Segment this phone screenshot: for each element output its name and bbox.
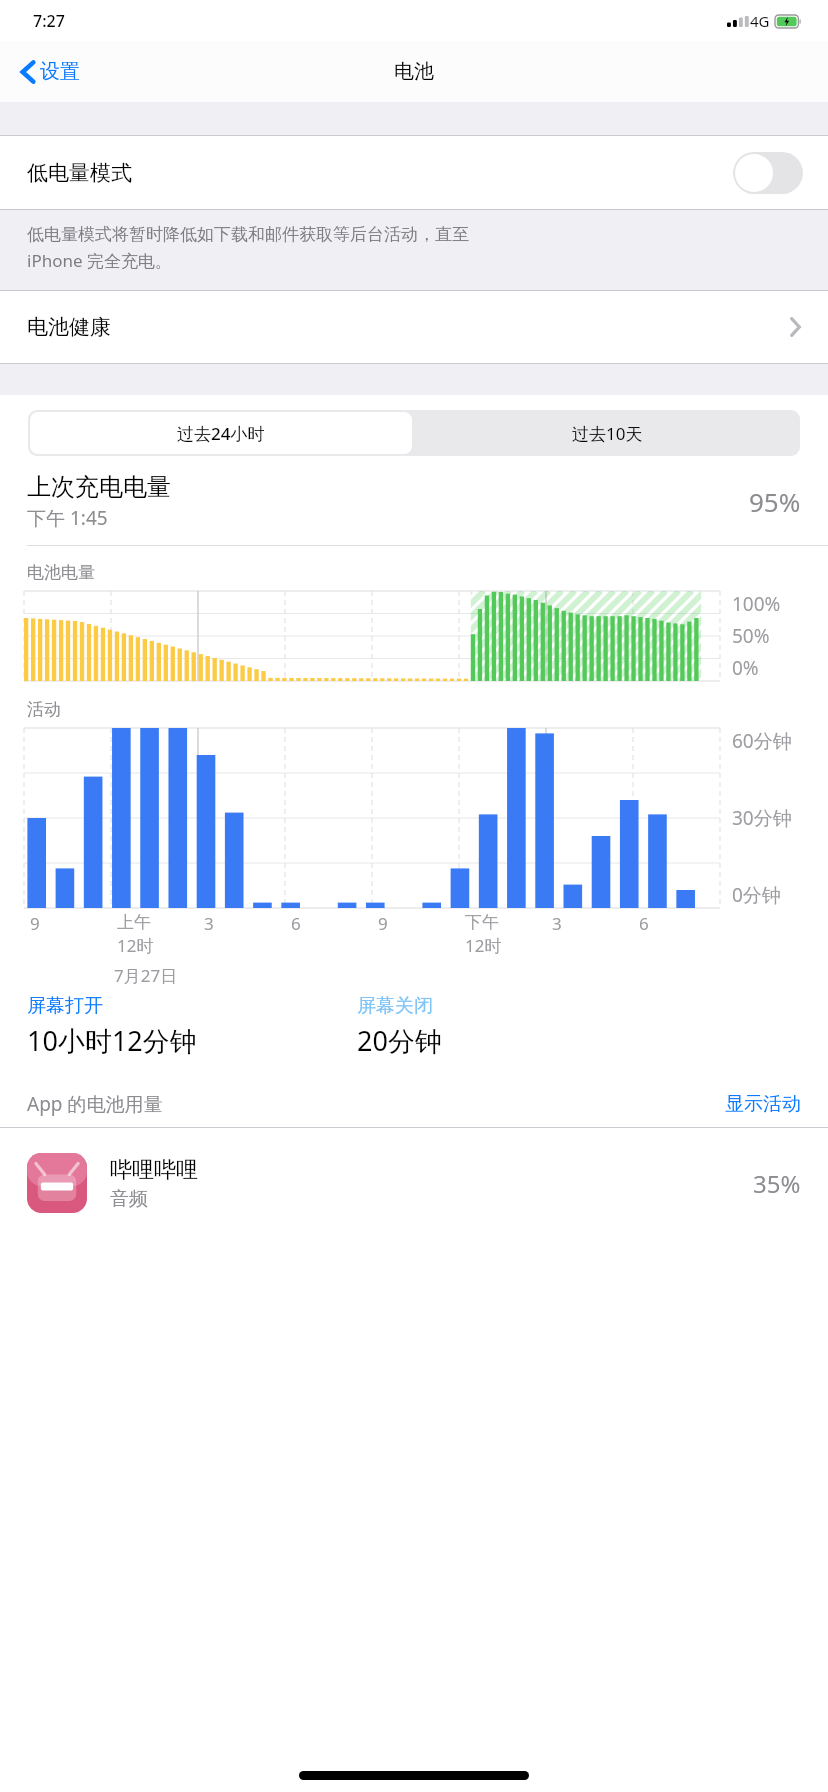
button[interactable]: 设置 — [17, 53, 84, 90]
staticText: 0分钟 — [732, 882, 781, 908]
staticText: 3 — [552, 912, 562, 935]
staticText: 哔哩哔哩 — [110, 1156, 198, 1184]
staticText: 7:27 — [33, 10, 65, 32]
staticText: 6 — [291, 912, 301, 935]
staticText: 35% — [753, 1167, 801, 1200]
staticText: 下午 1:45 — [27, 505, 108, 531]
staticText: 7月27日 — [114, 964, 178, 986]
staticText: 4G — [750, 11, 770, 31]
staticText: 电池电量 — [27, 562, 95, 583]
staticText: 电池健康 — [27, 314, 111, 340]
staticText: 上次充电电量 — [27, 472, 171, 502]
staticText: 低电量模式 — [27, 160, 132, 186]
staticText: 屏幕打开 — [27, 994, 103, 1018]
staticText: 低电量模式将暂时降低如下载和邮件获取等后台活动，直至 iPhone 完全充电。 — [27, 224, 469, 272]
staticText: 过去10天 — [572, 422, 643, 445]
staticText: 95% — [749, 484, 801, 519]
button[interactable]: 过去24小时 — [30, 412, 412, 454]
button[interactable]: 过去10天 — [414, 410, 800, 456]
staticText: 50% — [732, 623, 770, 649]
staticText: 60分钟 — [732, 728, 792, 754]
staticText: 过去24小时 — [177, 422, 265, 445]
staticText: 上午 12时 — [117, 912, 154, 957]
staticText: 活动 — [27, 699, 61, 720]
staticText: 音频 — [110, 1187, 148, 1211]
staticText: 10小时12分钟 — [27, 1022, 197, 1059]
button[interactable] — [733, 152, 803, 194]
button[interactable]: 电池健康 — [0, 291, 828, 363]
staticText: 20分钟 — [357, 1022, 442, 1059]
staticText: 屏幕关闭 — [357, 994, 433, 1018]
staticText: 下午 12时 — [465, 912, 502, 957]
staticText: 100% — [732, 591, 781, 617]
staticText: 3 — [204, 912, 214, 935]
staticText: 9 — [30, 912, 40, 935]
staticText: 6 — [639, 912, 649, 935]
staticText: 显示活动 — [725, 1092, 801, 1116]
button[interactable]: 哔哩哔哩 — [0, 1128, 828, 1238]
staticText: 0% — [732, 655, 759, 681]
staticText: 9 — [378, 912, 388, 935]
staticText: App 的电池用量 — [27, 1091, 163, 1117]
button[interactable]: 低电量模式 — [0, 136, 828, 209]
staticText: 设置 — [40, 59, 80, 84]
staticText: 30分钟 — [732, 805, 792, 831]
other: 打开电池健康 — [790, 317, 801, 337]
button[interactable]: 显示活动 — [725, 1092, 801, 1116]
staticText: 电池 — [394, 59, 434, 84]
